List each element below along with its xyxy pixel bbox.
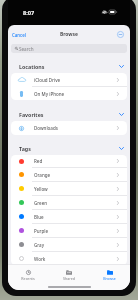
button[interactable]: Purple (11, 224, 127, 237)
staticText: Gray (34, 242, 45, 248)
button[interactable]: Recents (8, 265, 48, 290)
button[interactable]: Search (11, 44, 127, 53)
button[interactable]: Gray (11, 238, 127, 251)
button[interactable]: Browse (89, 265, 130, 290)
staticText: Yellow (34, 186, 48, 192)
button[interactable]: Collapse Favorites (117, 110, 126, 119)
staticText: Downloads (34, 125, 58, 131)
button[interactable]: Red (11, 155, 127, 167)
staticText: Search (19, 46, 34, 52)
staticText: Green (34, 200, 48, 206)
staticText: Blue (34, 214, 44, 220)
staticText: Purple (34, 228, 49, 234)
button[interactable]: Orange (11, 168, 127, 181)
staticText: Shared (63, 276, 75, 281)
staticText: Tags (19, 145, 31, 152)
staticText: Orange (34, 172, 51, 178)
button[interactable]: More options (115, 29, 126, 40)
staticText: Browse (103, 276, 116, 281)
button[interactable]: Blue (11, 210, 127, 223)
staticText: Recents (21, 276, 35, 281)
button[interactable]: iCloud Drive (11, 73, 127, 86)
button[interactable]: Downloads (11, 121, 127, 135)
staticText: Cancel (12, 32, 26, 38)
button[interactable]: Collapse Locations (117, 62, 126, 71)
staticText: iCloud Drive (34, 77, 61, 83)
button[interactable]: Cancel (8, 29, 30, 41)
staticText: Browse (60, 31, 78, 38)
staticText: 8:07 (23, 9, 35, 17)
staticText: Favorites (19, 111, 44, 118)
staticText: Red (34, 158, 43, 164)
staticText: Work (34, 256, 46, 262)
button[interactable]: Work (11, 252, 127, 265)
button[interactable]: Green (11, 196, 127, 209)
staticText: Locations (19, 63, 45, 70)
button[interactable]: Collapse Tags (117, 144, 126, 153)
button[interactable]: Shared (48, 265, 89, 290)
button[interactable]: On My iPhone (11, 87, 127, 100)
staticText: On My iPhone (34, 91, 65, 97)
button[interactable]: Yellow (11, 182, 127, 195)
